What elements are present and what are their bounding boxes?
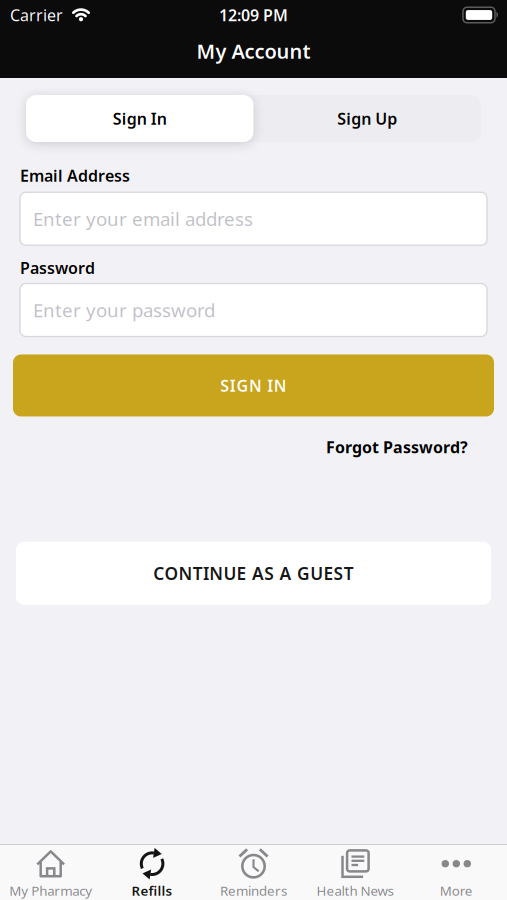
staticText: Enter your email address bbox=[33, 206, 253, 231]
staticText: Sign In bbox=[113, 108, 167, 129]
staticText: Reminders bbox=[220, 882, 287, 899]
staticText: Forgot Password? bbox=[326, 436, 468, 458]
button[interactable]: Sign In bbox=[26, 95, 253, 142]
staticText: My Account bbox=[196, 38, 310, 64]
staticText: CONTINUE AS A GUEST bbox=[153, 562, 354, 585]
staticText: Health News bbox=[316, 882, 393, 899]
staticText: 12:09 PM bbox=[219, 4, 288, 26]
button[interactable]: More bbox=[406, 848, 507, 899]
staticText: Refills bbox=[132, 882, 173, 899]
button[interactable]: My Pharmacy bbox=[0, 848, 101, 899]
staticText: Password bbox=[20, 257, 95, 278]
staticText: More bbox=[440, 882, 473, 899]
staticText: My Pharmacy bbox=[9, 882, 92, 899]
staticText: Sign Up bbox=[337, 108, 397, 129]
button[interactable]: Refills bbox=[101, 848, 203, 899]
staticText: Carrier bbox=[10, 4, 63, 26]
staticText: Email Address bbox=[20, 165, 130, 186]
button[interactable]: Forgot Password? bbox=[326, 436, 468, 458]
staticText: SIGN IN bbox=[220, 375, 287, 396]
button[interactable]: Health News bbox=[304, 848, 406, 899]
button[interactable]: Reminders bbox=[203, 848, 304, 899]
button[interactable]: Enter your email address bbox=[20, 192, 487, 245]
button[interactable]: Enter your password bbox=[20, 283, 487, 336]
button[interactable]: Sign Up bbox=[253, 108, 481, 129]
button[interactable]: SIGN IN bbox=[13, 354, 494, 416]
staticText: Enter your password bbox=[33, 298, 215, 322]
button[interactable]: CONTINUE AS A GUEST bbox=[16, 542, 491, 605]
